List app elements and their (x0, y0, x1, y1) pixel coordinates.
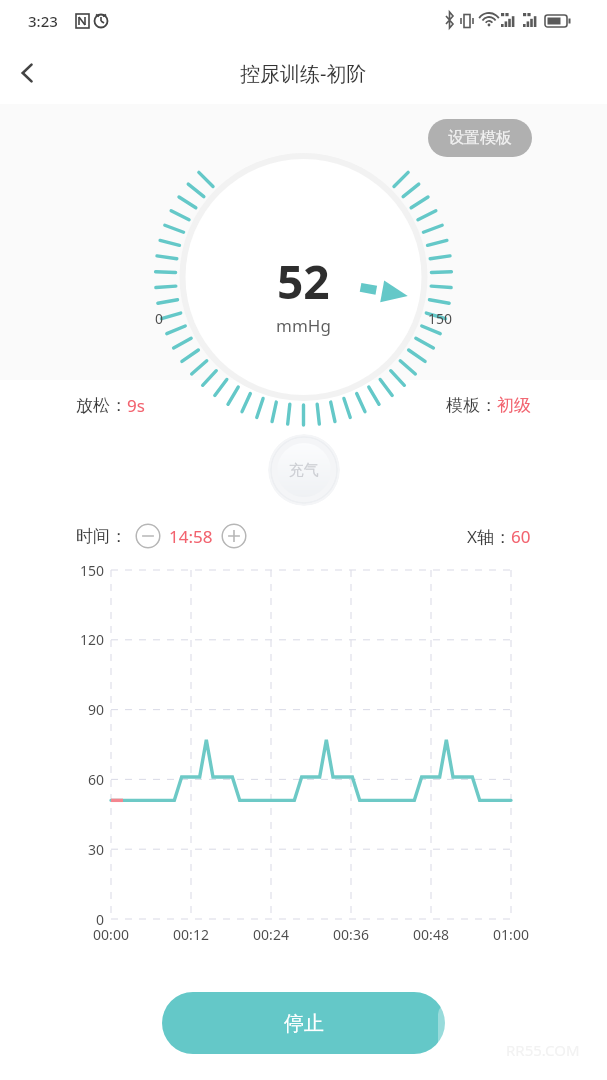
staticText: 00:36 (324, 925, 378, 944)
staticText: 0 (155, 309, 164, 328)
button[interactable]: Back (0, 45, 56, 101)
staticText: 90 (60, 700, 104, 719)
staticText: 120 (60, 630, 104, 649)
staticText: 初级 (497, 395, 531, 416)
staticText: RR55.COM (506, 1040, 580, 1060)
staticText: 0 (60, 910, 104, 929)
button[interactable]: Increase (221, 523, 247, 549)
button[interactable]: 充气 (268, 434, 340, 506)
button[interactable]: 停止 (162, 992, 445, 1054)
staticText: 充气 (289, 461, 319, 480)
staticText: 00:00 (84, 925, 138, 944)
staticText: 60 (511, 525, 531, 548)
staticText: 00:48 (404, 925, 458, 944)
staticText: 14:58 (169, 525, 213, 548)
staticText: 放松： (76, 395, 127, 416)
staticText: 时间： (76, 526, 127, 547)
staticText: 60 (60, 770, 104, 789)
button[interactable]: Decrease (135, 523, 161, 549)
staticText: 00:24 (244, 925, 298, 944)
staticText: 52 (277, 250, 330, 313)
staticText: 3:23 (28, 11, 58, 31)
staticText: 设置模板 (448, 128, 512, 148)
staticText: 30 (60, 840, 104, 859)
staticText: 01:00 (484, 925, 538, 944)
staticText: 控尿训练-初阶 (240, 60, 367, 87)
staticText: mmHg (276, 314, 331, 337)
staticText: 150 (60, 561, 104, 580)
staticText: 模板： (446, 395, 497, 416)
staticText: X轴： (467, 525, 511, 548)
staticText: 150 (428, 309, 453, 328)
button[interactable]: 设置模板 (428, 119, 532, 157)
staticText: 00:12 (164, 925, 218, 944)
staticText: 停止 (284, 1011, 324, 1036)
staticText: 9s (127, 394, 145, 417)
